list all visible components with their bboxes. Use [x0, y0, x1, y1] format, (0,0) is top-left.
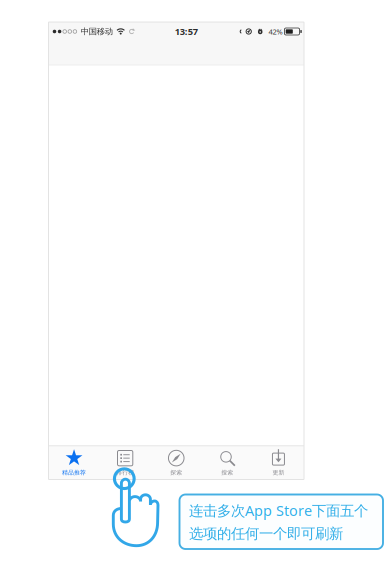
staticText: 中国移动: [81, 26, 113, 37]
button[interactable]: 更新: [253, 445, 304, 479]
staticText: 排行榜: [116, 469, 134, 476]
button[interactable]: 探索: [151, 445, 202, 479]
staticText: 搜索: [221, 469, 233, 476]
button[interactable]: 排行榜: [100, 445, 151, 479]
staticText: 探索: [170, 469, 182, 476]
button[interactable]: 搜索: [202, 445, 253, 479]
staticText: 连击多次App Store下面五个: [189, 500, 368, 520]
staticText: 42%: [269, 26, 283, 37]
staticText: 精品推荐: [62, 469, 86, 476]
staticText: 13:57: [175, 25, 198, 38]
button[interactable]: 精品推荐: [48, 445, 100, 479]
staticText: 选项的任何一个即可刷新: [189, 525, 343, 543]
staticText: 更新: [272, 469, 284, 476]
